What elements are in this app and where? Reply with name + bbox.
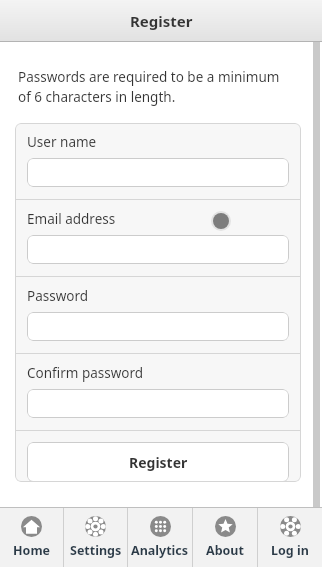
staticText: Email address — [27, 210, 116, 228]
staticText: Register — [130, 11, 193, 31]
staticText: Passwords are required to be a minimum o… — [18, 68, 280, 106]
button[interactable] — [27, 158, 289, 187]
button[interactable]: Register — [27, 442, 289, 482]
button[interactable]: Analytics — [128, 508, 192, 567]
other: Help — [211, 211, 231, 231]
button[interactable] — [27, 389, 289, 418]
staticText: Analytics — [131, 542, 189, 559]
staticText: Confirm password — [27, 364, 144, 382]
staticText: Register — [129, 453, 188, 472]
staticText: Log in — [271, 542, 309, 559]
button[interactable] — [27, 235, 289, 264]
staticText: Home — [13, 542, 51, 559]
button[interactable]: About — [193, 508, 257, 567]
button[interactable]: Log in — [258, 508, 322, 567]
button[interactable]: Settings — [64, 508, 127, 567]
button[interactable] — [27, 312, 289, 341]
staticText: Settings — [70, 542, 122, 559]
staticText: User name — [27, 133, 97, 151]
staticText: Password — [27, 287, 89, 305]
staticText: About — [206, 542, 244, 559]
button[interactable]: Home — [0, 508, 63, 567]
